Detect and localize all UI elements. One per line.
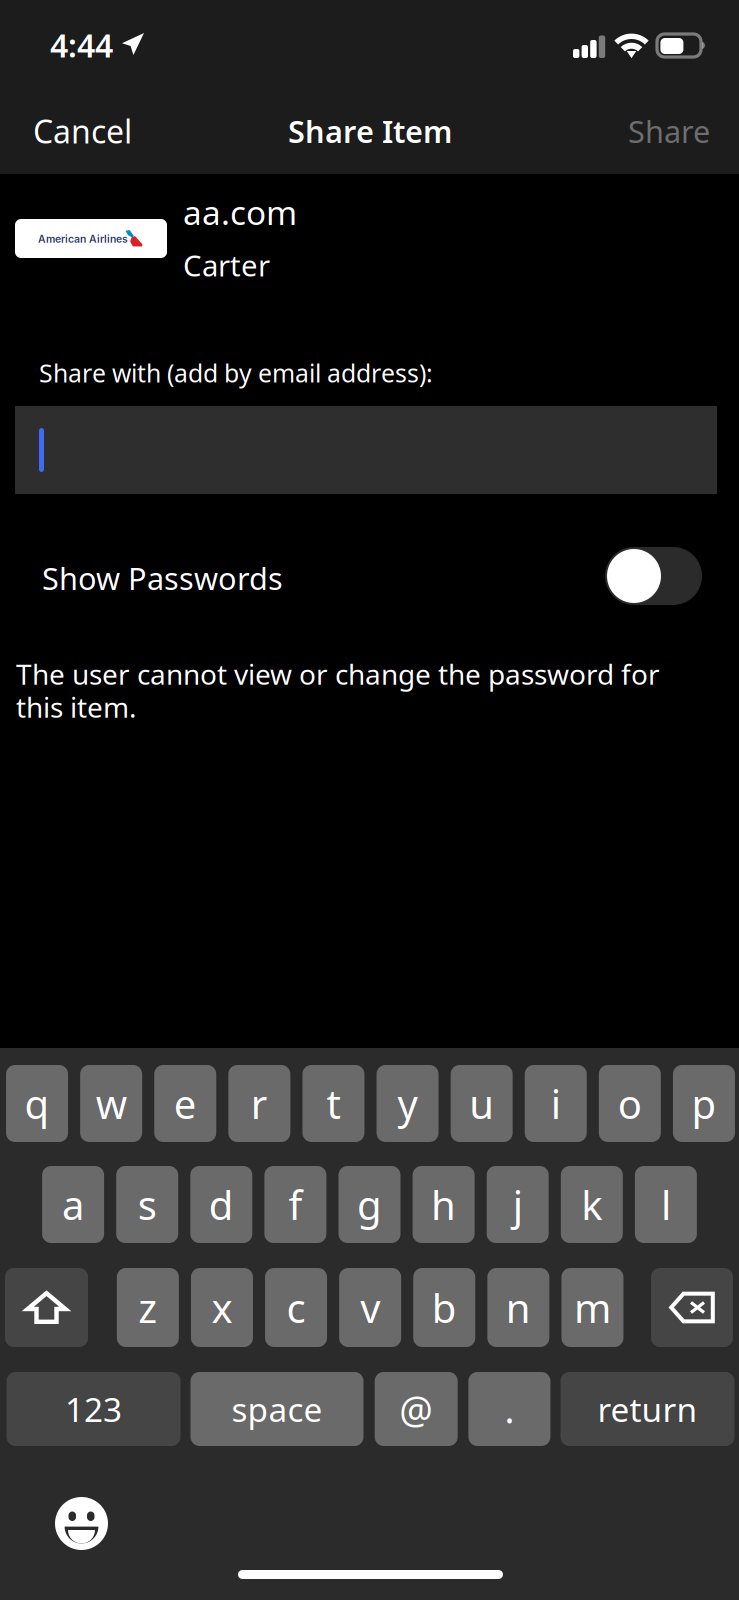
staticText: return	[597, 1387, 697, 1431]
staticText: space	[231, 1387, 322, 1431]
staticText: this item.	[16, 688, 137, 726]
button[interactable]: j	[487, 1166, 549, 1243]
staticText: g	[357, 1178, 382, 1231]
staticText: @	[399, 1384, 433, 1434]
button[interactable]: Delete	[651, 1268, 733, 1347]
button[interactable]: b	[413, 1268, 475, 1347]
button[interactable]: t	[302, 1065, 364, 1142]
button[interactable]: Show Passwords	[605, 547, 702, 605]
button[interactable]: .	[468, 1372, 550, 1446]
staticText: n	[506, 1281, 531, 1334]
button[interactable]: r	[228, 1065, 290, 1142]
button[interactable]: space	[190, 1372, 363, 1446]
button[interactable]: return	[560, 1372, 734, 1446]
staticText: Show Passwords	[42, 558, 283, 598]
button[interactable]: Share	[570, 111, 710, 151]
staticText: f	[288, 1178, 302, 1231]
staticText: t	[326, 1077, 340, 1130]
button[interactable]: l	[635, 1166, 697, 1243]
staticText: k	[581, 1178, 602, 1231]
staticText: Share	[628, 111, 710, 151]
staticText: 123	[65, 1387, 122, 1431]
staticText: Share with (add by email address):	[39, 356, 433, 390]
button[interactable]: k	[561, 1166, 623, 1243]
button[interactable]: @	[375, 1372, 458, 1446]
button[interactable]: i	[525, 1065, 587, 1142]
staticText: Share Item	[288, 111, 452, 151]
button[interactable]: u	[451, 1065, 513, 1142]
button[interactable]: x	[191, 1268, 253, 1347]
staticText: aa.com	[183, 190, 297, 234]
staticText: u	[469, 1077, 494, 1130]
button[interactable]: Email address	[15, 406, 717, 494]
staticText: .	[504, 1384, 514, 1434]
button[interactable]: a	[42, 1166, 104, 1243]
staticText: i	[551, 1077, 561, 1130]
staticText: p	[691, 1077, 716, 1130]
button[interactable]: m	[561, 1268, 623, 1347]
staticText: e	[174, 1077, 197, 1130]
button[interactable]: w	[80, 1065, 142, 1142]
button[interactable]: f	[264, 1166, 326, 1243]
button[interactable]: z	[117, 1268, 179, 1347]
button[interactable]: Cancel	[33, 111, 173, 151]
button[interactable]: Shift	[5, 1268, 88, 1347]
staticText: Cancel	[33, 110, 132, 152]
button[interactable]: c	[265, 1268, 327, 1347]
staticText: 4:44	[50, 24, 113, 66]
button[interactable]: h	[413, 1166, 475, 1243]
staticText: y	[398, 1077, 418, 1130]
button[interactable]: v	[339, 1268, 401, 1347]
staticText: h	[431, 1178, 456, 1231]
button[interactable]: Emoji keyboard	[55, 1497, 108, 1550]
staticText: The user cannot view or change the passw…	[16, 655, 660, 693]
button[interactable]: s	[116, 1166, 178, 1243]
button[interactable]: q	[6, 1065, 68, 1142]
staticText: l	[661, 1178, 671, 1231]
button[interactable]: y	[377, 1065, 439, 1142]
button[interactable]: g	[338, 1166, 400, 1243]
button[interactable]: d	[190, 1166, 252, 1243]
button[interactable]: o	[599, 1065, 661, 1142]
staticText: z	[138, 1281, 157, 1334]
staticText: s	[138, 1178, 157, 1231]
staticText: x	[211, 1281, 232, 1334]
staticText: w	[96, 1077, 127, 1130]
button[interactable]: e	[154, 1065, 216, 1142]
staticText: m	[574, 1281, 611, 1334]
staticText: c	[286, 1281, 305, 1334]
button[interactable]: p	[673, 1065, 735, 1142]
button[interactable]: 123	[6, 1372, 180, 1446]
staticText: v	[360, 1281, 380, 1334]
staticText: r	[251, 1077, 268, 1130]
staticText: Carter	[183, 245, 270, 284]
staticText: o	[618, 1077, 642, 1130]
staticText: q	[25, 1077, 50, 1130]
staticText: American Airlines	[38, 233, 128, 245]
staticText: a	[62, 1178, 84, 1231]
button[interactable]: n	[487, 1268, 549, 1347]
staticText: d	[209, 1178, 234, 1231]
staticText: j	[513, 1178, 523, 1231]
staticText: b	[432, 1281, 457, 1334]
